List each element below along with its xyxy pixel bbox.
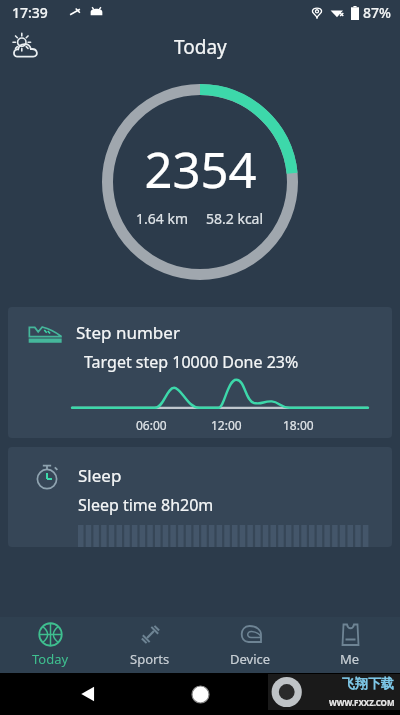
staticText: 飞翔下载 <box>342 675 394 691</box>
staticText: Sleep <box>78 464 122 487</box>
staticText: 18:00 <box>283 417 314 433</box>
button[interactable]: Home <box>180 674 220 714</box>
button[interactable]: Step number <box>8 307 392 438</box>
staticText: 2354 <box>144 136 257 203</box>
button[interactable]: Sleep <box>8 447 392 547</box>
button[interactable]: Back <box>68 674 108 714</box>
button[interactable]: Sports <box>100 617 200 673</box>
button[interactable]: Today <box>0 617 100 673</box>
staticText: Step number <box>76 321 180 344</box>
staticText: WWW.FXXZ.COM <box>329 697 395 708</box>
staticText: 17:39 <box>12 3 48 22</box>
staticText: 58.2 kcal <box>206 209 264 228</box>
button[interactable]: Weather <box>4 25 48 69</box>
staticText: 06:00 <box>136 417 167 433</box>
staticText: Sports <box>130 650 170 668</box>
button[interactable]: Me <box>300 617 400 673</box>
staticText: 1.64 km <box>136 209 188 228</box>
staticText: Today <box>32 650 69 668</box>
staticText: Me <box>340 650 360 668</box>
staticText: Sleep time 8h20m <box>78 494 214 516</box>
staticText: 12:00 <box>211 417 242 433</box>
button[interactable]: Device <box>200 617 300 673</box>
staticText: 87% <box>363 3 391 22</box>
staticText: Device <box>230 650 271 668</box>
staticText: Target step 10000 Done 23% <box>84 351 299 373</box>
staticText: Today <box>174 34 227 60</box>
